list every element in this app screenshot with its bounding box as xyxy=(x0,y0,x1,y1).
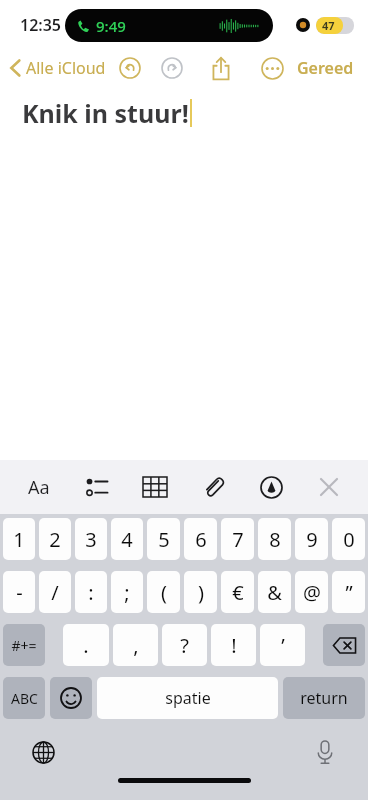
staticText: Gereed xyxy=(297,57,354,79)
staticText: return xyxy=(300,687,348,709)
button[interactable]: Dictate xyxy=(308,735,342,769)
staticText: 4 xyxy=(121,526,133,553)
button[interactable]: return xyxy=(283,677,365,719)
button[interactable]: Backspace xyxy=(323,624,365,666)
button[interactable]: Checklist xyxy=(78,468,116,506)
button[interactable]: 6 xyxy=(184,518,217,560)
staticText: . xyxy=(83,632,89,659)
staticText: : xyxy=(88,579,94,606)
button[interactable]: . xyxy=(63,624,109,666)
button[interactable]: 4 xyxy=(111,518,143,560)
button[interactable]: 1 xyxy=(3,518,35,560)
staticText: € xyxy=(232,579,244,606)
button[interactable]: - xyxy=(3,571,35,613)
staticText: 2 xyxy=(49,526,61,553)
staticText: Aa xyxy=(28,475,50,500)
button[interactable]: 8 xyxy=(258,518,291,560)
staticText: 0 xyxy=(343,526,355,553)
button[interactable]: Undo xyxy=(113,51,147,85)
button[interactable]: Text format xyxy=(20,468,58,506)
button[interactable]: #+= xyxy=(3,624,45,666)
staticText: Alle iCloud xyxy=(26,57,106,79)
button[interactable]: Share xyxy=(204,51,238,85)
staticText: 47 xyxy=(322,18,335,33)
button[interactable]: ? xyxy=(162,624,207,666)
staticText: ! xyxy=(231,632,237,659)
button[interactable]: ” xyxy=(332,571,365,613)
staticText: - xyxy=(16,579,23,606)
button[interactable]: Redo xyxy=(155,51,189,85)
staticText: spatie xyxy=(165,687,211,709)
staticText: ? xyxy=(180,632,189,659)
button[interactable]: ) xyxy=(184,571,217,613)
button[interactable]: & xyxy=(258,571,291,613)
button[interactable]: Table xyxy=(136,468,174,506)
staticText: , xyxy=(133,632,139,659)
button[interactable]: ( xyxy=(147,571,180,613)
staticText: 8 xyxy=(269,526,281,553)
staticText: 7 xyxy=(232,526,244,553)
staticText: ) xyxy=(198,579,204,606)
button[interactable]: Change language xyxy=(26,735,60,769)
staticText: Knik in stuur! xyxy=(22,96,189,130)
button[interactable]: 0 xyxy=(332,518,365,560)
staticText: / xyxy=(51,579,59,606)
staticText: #+= xyxy=(11,636,37,655)
button[interactable]: Close keyboard xyxy=(310,468,348,506)
staticText: 12:35 xyxy=(20,14,62,36)
staticText: ( xyxy=(161,579,167,606)
staticText: @ xyxy=(303,579,321,606)
button[interactable]: 2 xyxy=(39,518,71,560)
button[interactable]: ABC xyxy=(3,677,45,719)
button[interactable]: More options xyxy=(255,51,289,85)
staticText: 9 xyxy=(306,526,318,553)
button[interactable]: 5 xyxy=(147,518,180,560)
button[interactable]: Markup xyxy=(252,468,290,506)
button[interactable]: ! xyxy=(211,624,256,666)
button[interactable]: ; xyxy=(111,571,143,613)
staticText: ” xyxy=(345,579,353,606)
button[interactable]: @ xyxy=(295,571,328,613)
button[interactable]: / xyxy=(39,571,71,613)
staticText: 5 xyxy=(158,526,170,553)
staticText: 1 xyxy=(13,526,25,553)
button[interactable]: 7 xyxy=(221,518,254,560)
staticText: 9:49 xyxy=(96,16,126,36)
button[interactable]: 9 xyxy=(295,518,328,560)
button[interactable]: € xyxy=(221,571,254,613)
button[interactable]: : xyxy=(75,571,107,613)
button[interactable]: Emoji xyxy=(50,677,92,719)
staticText: ABC xyxy=(11,689,38,708)
button[interactable]: 3 xyxy=(75,518,107,560)
staticText: 3 xyxy=(85,526,97,553)
staticText: ’ xyxy=(281,632,285,659)
button[interactable]: Attach xyxy=(194,468,232,506)
button[interactable]: spatie xyxy=(97,677,278,719)
button[interactable]: Gereed xyxy=(283,52,368,84)
button[interactable]: ’ xyxy=(260,624,305,666)
button[interactable]: , xyxy=(113,624,158,666)
staticText: 6 xyxy=(195,526,207,553)
staticText: & xyxy=(267,579,282,606)
staticText: ; xyxy=(124,579,130,606)
button[interactable]: Alle iCloud xyxy=(6,53,110,83)
